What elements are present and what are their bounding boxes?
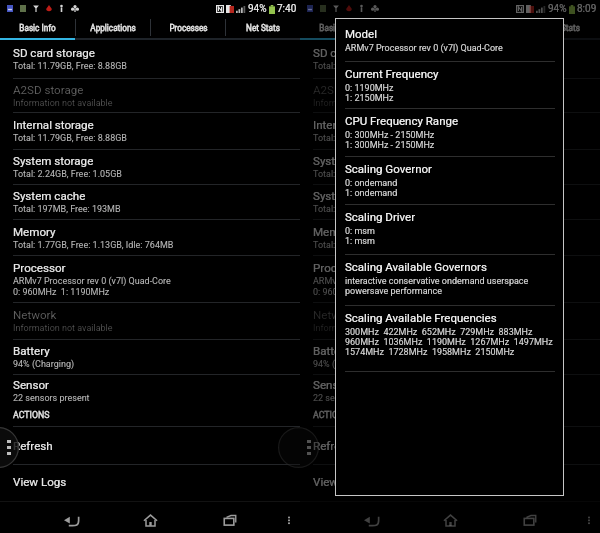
staticText: Battery xyxy=(13,344,50,358)
staticText: Basic Info xyxy=(319,23,356,33)
staticText: Processes xyxy=(169,23,208,33)
staticText: 0: msm 1: msm xyxy=(345,226,375,246)
button[interactable]: Back xyxy=(56,507,86,533)
staticText: System storage xyxy=(13,154,94,168)
button[interactable]: SD card storage xyxy=(0,40,300,78)
staticText: Current Frequency xyxy=(345,67,439,80)
button[interactable]: A2SD storage xyxy=(0,79,300,112)
staticText: 94% xyxy=(548,3,567,15)
staticText: Processor xyxy=(13,261,66,275)
button[interactable]: Net Stats xyxy=(226,17,300,38)
staticText: Memory xyxy=(313,225,356,239)
button[interactable]: Home xyxy=(435,507,465,533)
staticText: Battery xyxy=(313,344,350,358)
staticText: interactive conservative ondemand usersp… xyxy=(345,276,529,296)
button[interactable]: Recents xyxy=(515,507,545,533)
button[interactable]: Processor xyxy=(300,256,600,302)
button[interactable]: Applications xyxy=(376,17,450,38)
staticText: 300MHz 422MHz 652MHz 729MHz 883MHz 960MH… xyxy=(345,327,553,357)
button[interactable]: Drag handle xyxy=(278,427,319,468)
button[interactable]: Home xyxy=(135,507,165,533)
staticText: Information not available xyxy=(313,323,413,334)
button[interactable]: Net Stats xyxy=(526,17,600,38)
staticText: System cache xyxy=(13,189,86,203)
button[interactable]: Refresh xyxy=(300,427,600,464)
button[interactable]: More options xyxy=(574,507,600,533)
staticText: Total: 11.79GB, Free: 8.88GB xyxy=(13,61,127,72)
staticText: 22 sensors present xyxy=(313,393,390,404)
staticText: System cache xyxy=(313,189,386,203)
button[interactable]: Internal storage xyxy=(0,113,300,149)
staticText: 0: 1190MHz 1: 2150MHz xyxy=(345,83,394,103)
staticText: Scaling Available Governors xyxy=(345,260,487,273)
staticText: Applications xyxy=(90,23,136,33)
staticText: A2SD storage xyxy=(13,83,84,97)
button[interactable]: Memory xyxy=(300,220,600,255)
button[interactable]: Network xyxy=(300,303,600,339)
staticText: SD card storage xyxy=(313,46,395,60)
button[interactable]: Recents xyxy=(215,507,245,533)
staticText: Total: 11.79GB, Free: 8.88GB xyxy=(13,133,127,144)
button[interactable]: Applications xyxy=(76,17,150,38)
staticText: Refresh xyxy=(313,439,353,453)
staticText: 0: 960MHz 1: 1190MHz xyxy=(313,287,410,298)
button[interactable]: Processes xyxy=(151,17,225,38)
staticText: Basic Info xyxy=(19,23,56,33)
button[interactable]: View Logs xyxy=(0,465,300,502)
button[interactable]: Processes xyxy=(451,17,525,38)
staticText: Net Stats xyxy=(546,23,580,33)
staticText: 0: ondemand 1: ondemand xyxy=(345,178,398,198)
staticText: Information not available xyxy=(13,98,113,109)
staticText: Scaling Available Frequencies xyxy=(345,311,497,324)
button[interactable]: Battery xyxy=(0,340,300,374)
staticText: ACTIONS xyxy=(313,410,350,420)
staticText: Network xyxy=(313,308,357,322)
staticText: CPU Frequency Range xyxy=(345,114,459,127)
button[interactable]: System cache xyxy=(0,185,300,219)
button[interactable]: View Logs xyxy=(300,465,600,502)
button[interactable]: Network xyxy=(0,303,300,339)
button[interactable]: Drag handle xyxy=(0,427,19,468)
button[interactable]: System cache xyxy=(300,185,600,219)
staticText: 22 sensors present xyxy=(13,393,90,404)
staticText: Scaling Driver xyxy=(345,210,416,223)
staticText: ARMv7 Processor rev 0 (v7l) Quad-Core xyxy=(313,276,471,287)
staticText: Total: 2.24GB, Free: 1.05GB xyxy=(13,169,122,180)
staticText: 7:40 xyxy=(277,3,297,15)
staticText: Model xyxy=(345,27,377,40)
staticText: Total: 197MB, Free: 193MB xyxy=(13,204,121,215)
staticText: Net Stats xyxy=(246,23,280,33)
button[interactable]: SD card storage xyxy=(300,40,600,78)
button[interactable]: Back xyxy=(356,507,386,533)
staticText: System storage xyxy=(313,154,394,168)
staticText: 0: 300MHz - 2150MHz 1: 300MHz - 2150MHz xyxy=(345,130,435,150)
button[interactable]: System storage xyxy=(0,150,300,184)
staticText: Sensor xyxy=(313,378,349,392)
staticText: 94% (Charging) xyxy=(313,359,375,370)
button[interactable]: Memory xyxy=(0,220,300,255)
button[interactable]: More options xyxy=(274,507,304,533)
button[interactable]: Processor xyxy=(0,256,300,302)
staticText: Total: 11.79GB, Free: 8.88GB xyxy=(313,61,427,72)
button[interactable]: Basic Info xyxy=(0,17,75,38)
staticText: 0: 960MHz 1: 1190MHz xyxy=(13,287,110,298)
button[interactable]: Internal storage xyxy=(300,113,600,149)
button[interactable]: Battery xyxy=(300,340,600,374)
staticText: ARMv7 Processor rev 0 (v7l) Quad-Core xyxy=(13,276,171,287)
staticText: View Logs xyxy=(313,475,367,489)
button[interactable]: Basic Info xyxy=(300,17,375,38)
button[interactable]: A2SD storage xyxy=(300,79,600,112)
staticText: Processor xyxy=(313,261,366,275)
staticText: Internal storage xyxy=(313,118,394,132)
staticText: View Logs xyxy=(13,475,67,489)
button[interactable]: Refresh xyxy=(0,427,300,464)
staticText: Refresh xyxy=(13,439,53,453)
staticText: SD card storage xyxy=(13,46,95,60)
staticText: Network xyxy=(13,308,57,322)
button[interactable]: System storage xyxy=(300,150,600,184)
staticText: 94% xyxy=(248,3,267,15)
staticText: Information not available xyxy=(313,98,413,109)
staticText: Total: 2.24GB, Free: 1.05GB xyxy=(313,169,422,180)
